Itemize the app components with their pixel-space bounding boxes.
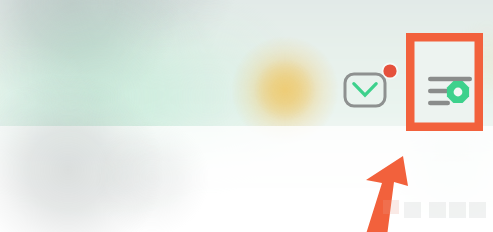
button[interactable]: Settings list [0,0,493,232]
button[interactable]: Messages, 1 unread [0,0,493,232]
